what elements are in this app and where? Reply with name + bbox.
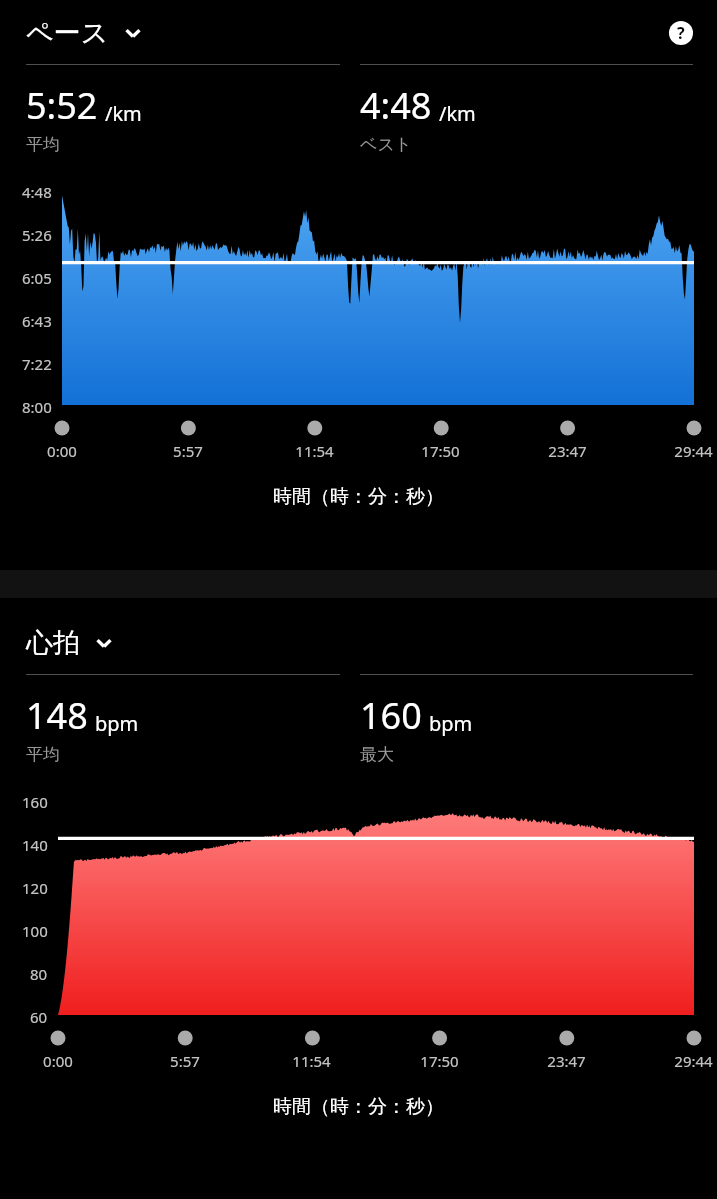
staticText: ベスト <box>360 134 413 155</box>
staticText: 23:47 <box>548 441 587 461</box>
staticText: 23:47 <box>547 1051 586 1071</box>
staticText: 8:00 <box>22 397 52 417</box>
button[interactable]: ペース <box>26 16 145 50</box>
staticText: 140 <box>22 835 48 855</box>
staticText: 5:57 <box>173 441 203 461</box>
staticText: ペース <box>26 16 109 50</box>
staticText: 7:22 <box>22 354 52 374</box>
staticText: 17:50 <box>420 1051 459 1071</box>
staticText: 時間（時：分：秒） <box>273 485 444 509</box>
staticText: 17:50 <box>421 441 460 461</box>
staticText: 0:00 <box>47 441 77 461</box>
button[interactable]: 心拍 <box>26 626 116 660</box>
staticText: /km <box>439 100 476 127</box>
staticText: /km <box>105 100 142 127</box>
staticText: 148 <box>26 691 88 740</box>
staticText: 平均 <box>26 744 60 765</box>
staticText: 6:05 <box>22 268 52 288</box>
staticText: 60 <box>30 1007 48 1027</box>
staticText: bpm <box>95 710 139 737</box>
staticText: 最大 <box>360 744 394 765</box>
staticText: 心拍 <box>26 626 80 660</box>
staticText: 平均 <box>26 134 60 155</box>
staticText: 4:48 <box>22 182 52 202</box>
button[interactable]: Help <box>667 19 695 47</box>
staticText: 120 <box>22 878 48 898</box>
staticText: ? <box>677 22 685 44</box>
staticText: 160 <box>22 792 48 812</box>
staticText: 時間（時：分：秒） <box>273 1095 444 1119</box>
staticText: 29:44 <box>674 1051 713 1071</box>
staticText: 4:48 <box>360 81 432 130</box>
staticText: 5:52 <box>26 81 98 130</box>
staticText: 6:43 <box>22 311 52 331</box>
staticText: 100 <box>22 921 48 941</box>
staticText: 11:54 <box>295 441 334 461</box>
staticText: 0:00 <box>43 1051 73 1071</box>
staticText: 11:54 <box>292 1051 331 1071</box>
staticText: 5:57 <box>170 1051 200 1071</box>
staticText: 160 <box>360 691 422 740</box>
staticText: 5:26 <box>22 225 52 245</box>
staticText: 29:44 <box>674 441 713 461</box>
staticText: bpm <box>429 710 473 737</box>
staticText: 80 <box>30 964 48 984</box>
